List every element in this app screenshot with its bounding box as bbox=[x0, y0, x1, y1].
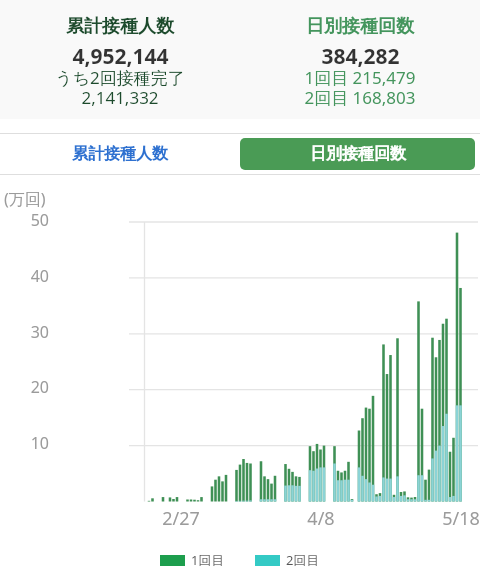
button[interactable]: 累計接種人数 bbox=[0, 133, 240, 175]
staticText: 20 bbox=[9, 376, 49, 398]
staticText: 日別接種回数 bbox=[310, 144, 406, 164]
staticText: 40 bbox=[9, 265, 49, 287]
staticText: 30 bbox=[9, 321, 49, 343]
staticText: 50 bbox=[9, 209, 49, 231]
button[interactable]: 日別接種回数 bbox=[240, 138, 475, 170]
staticText: 累計接種人数 bbox=[72, 144, 168, 164]
staticText: (万回) bbox=[4, 188, 46, 210]
staticText: 2回目 bbox=[286, 551, 320, 569]
staticText: 累計接種人数 bbox=[66, 15, 174, 38]
staticText: 日別接種回数 bbox=[306, 15, 414, 38]
staticText: うち2回接種完了 bbox=[55, 66, 185, 89]
staticText: 2/27 bbox=[151, 506, 211, 531]
staticText: 1回目 215,479 bbox=[304, 66, 416, 89]
staticText: 384,282 bbox=[321, 42, 400, 71]
staticText: 5/18 bbox=[431, 506, 480, 531]
staticText: 1回目 bbox=[191, 551, 225, 569]
staticText: 4,952,144 bbox=[72, 42, 169, 71]
staticText: 2,141,332 bbox=[81, 86, 159, 109]
staticText: 4/8 bbox=[291, 506, 351, 531]
staticText: 10 bbox=[9, 432, 49, 454]
staticText: 2回目 168,803 bbox=[304, 86, 416, 109]
